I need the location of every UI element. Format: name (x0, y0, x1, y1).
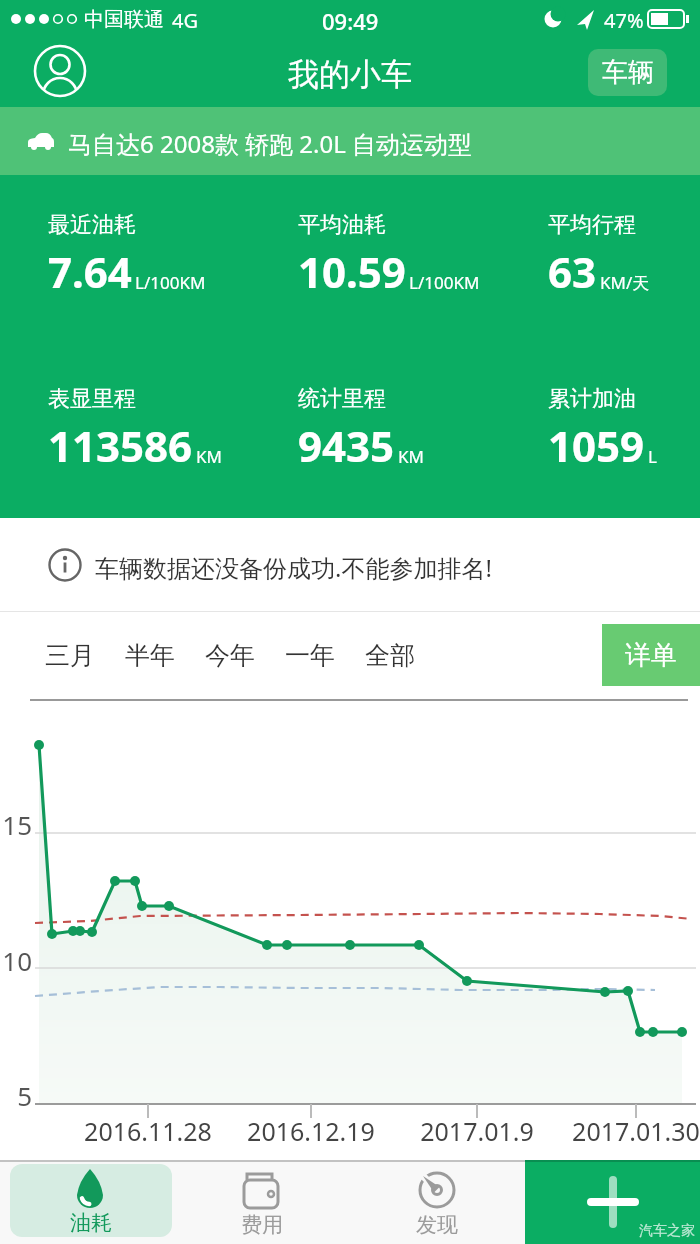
button[interactable]: 半年 (124, 634, 176, 676)
staticText: L/100KM (409, 271, 480, 294)
staticText: 最近油耗 (48, 211, 136, 239)
staticText: 1059 (548, 417, 645, 474)
staticText: 63 (548, 243, 597, 300)
staticText: 10 (2, 943, 32, 978)
staticText: KM (398, 445, 424, 468)
button[interactable]: 油耗 (10, 1164, 172, 1237)
staticText: 汽车之家 (639, 1222, 695, 1240)
staticText: L (648, 445, 657, 468)
staticText: 9435 (298, 417, 395, 474)
button[interactable]: 三月 (44, 634, 96, 676)
staticText: 半年 (125, 640, 175, 671)
staticText: 平均油耗 (298, 211, 386, 239)
button[interactable]: 马自达6 2008款 轿跑 2.0L 自动运动型 (0, 107, 700, 175)
staticText: 全部 (365, 640, 415, 671)
staticText: 马自达6 2008款 轿跑 2.0L 自动运动型 (68, 127, 473, 160)
staticText: 发现 (416, 1212, 458, 1238)
staticText: 5 (2, 1078, 32, 1113)
staticText: 详单 (625, 639, 677, 672)
staticText: 统计里程 (298, 385, 386, 413)
staticText: KM (196, 445, 222, 468)
button[interactable]: 费用 (222, 1170, 302, 1242)
staticText: 三月 (45, 640, 95, 671)
staticText: KM/天 (600, 271, 650, 294)
staticText: 中国联通 (84, 7, 164, 32)
staticText: 平均行程 (548, 211, 636, 239)
staticText: 4G (172, 7, 198, 34)
button[interactable] (34, 45, 86, 97)
staticText: 2017.01.9 (397, 1114, 557, 1148)
button[interactable]: 车辆 (588, 49, 667, 96)
button[interactable]: 车辆数据还没备份成功.不能参加排名! (0, 518, 700, 611)
staticText: 2017.01.30 (556, 1114, 700, 1148)
staticText: 费用 (241, 1212, 283, 1238)
staticText: 今年 (205, 640, 255, 671)
staticText: 2016.11.28 (68, 1114, 228, 1148)
staticText: 车辆 (602, 56, 654, 89)
staticText: 47% (604, 7, 644, 34)
staticText: 一年 (285, 640, 335, 671)
button[interactable]: 详单 (602, 624, 700, 686)
staticText: 15 (2, 807, 32, 842)
button[interactable]: 今年 (204, 634, 256, 676)
staticText: 油耗 (70, 1210, 112, 1236)
staticText: 2016.12.19 (231, 1114, 391, 1148)
staticText: 车辆数据还没备份成功.不能参加排名! (95, 551, 492, 584)
staticText: 113586 (48, 417, 193, 474)
staticText: 表显里程 (48, 385, 136, 413)
button[interactable]: 全部 (364, 634, 416, 676)
button[interactable]: 汽车之家 (525, 1160, 700, 1244)
staticText: 10.59 (298, 243, 406, 300)
button[interactable]: 发现 (397, 1170, 477, 1242)
staticText: 09:49 (322, 6, 379, 36)
staticText: 7.64 (48, 243, 132, 300)
staticText: 累计加油 (548, 385, 636, 413)
button[interactable]: 一年 (284, 634, 336, 676)
staticText: 我的小车 (288, 55, 412, 94)
staticText: L/100KM (135, 271, 206, 294)
